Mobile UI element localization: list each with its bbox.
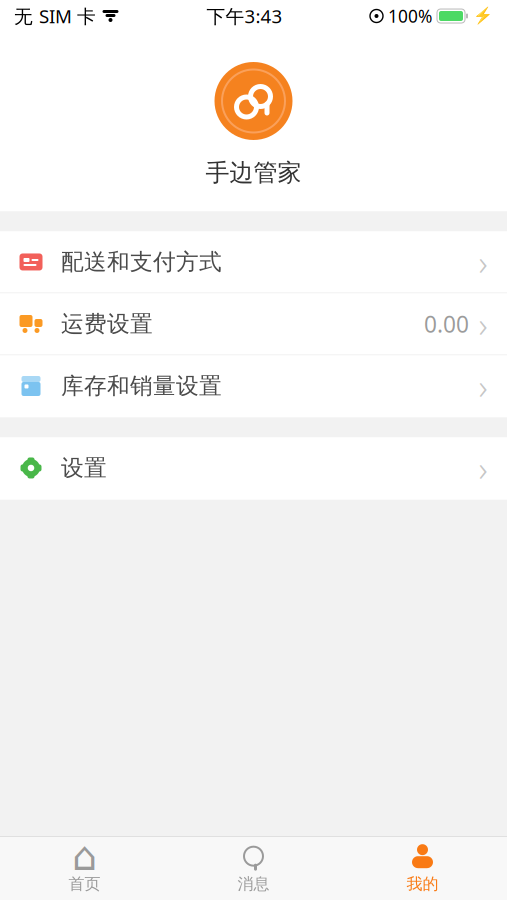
- button[interactable]: ⌂: [0, 837, 169, 900]
- staticText: ›: [478, 363, 487, 409]
- staticText: 配送和支付方式: [61, 248, 222, 276]
- staticText: 下午3:43: [206, 4, 282, 28]
- button[interactable]: 配送和支付方式: [0, 231, 507, 293]
- staticText: 手边管家: [205, 158, 301, 187]
- button[interactable]: 消息: [169, 837, 338, 900]
- staticText: ›: [478, 239, 487, 285]
- staticText: ⚡: [473, 7, 493, 25]
- button[interactable]: 运费设置: [0, 293, 507, 355]
- staticText: 100%: [388, 4, 432, 27]
- staticText: 库存和销量设置: [61, 372, 222, 400]
- staticText: 0.00: [424, 309, 469, 339]
- staticText: ⌂: [72, 833, 97, 879]
- staticText: ›: [478, 301, 487, 347]
- button[interactable]: 设置: [0, 437, 507, 499]
- staticText: ›: [478, 445, 487, 491]
- staticText: 首页: [68, 874, 100, 894]
- staticText: 我的: [406, 874, 438, 894]
- staticText: 设置: [61, 454, 107, 482]
- staticText: 运费设置: [61, 310, 153, 338]
- button[interactable]: 我的: [338, 837, 507, 900]
- button[interactable]: 库存和销量设置: [0, 355, 507, 417]
- staticText: 无 SIM 卡: [14, 4, 96, 28]
- staticText: 消息: [237, 874, 269, 894]
